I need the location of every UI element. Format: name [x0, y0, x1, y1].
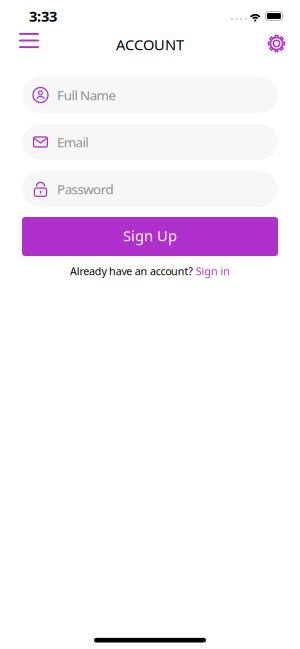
button[interactable]: Full Name — [22, 77, 278, 113]
staticText: Email — [57, 133, 88, 151]
button[interactable]: Email — [22, 124, 278, 160]
button[interactable]: Menu — [0, 33, 39, 48]
staticText: Full Name — [57, 86, 116, 104]
button[interactable]: Sign Up — [22, 217, 278, 256]
staticText: ACCOUNT — [116, 35, 184, 54]
staticText: Sign Up — [123, 226, 177, 245]
staticText: Password — [57, 180, 114, 198]
staticText: Sign in — [196, 264, 230, 278]
button[interactable]: Password — [22, 171, 278, 207]
staticText: 3:33 — [29, 6, 57, 26]
button[interactable]: Sign in — [196, 264, 230, 278]
staticText: Already have an account? — [70, 264, 193, 278]
button[interactable]: Settings — [268, 35, 300, 52]
